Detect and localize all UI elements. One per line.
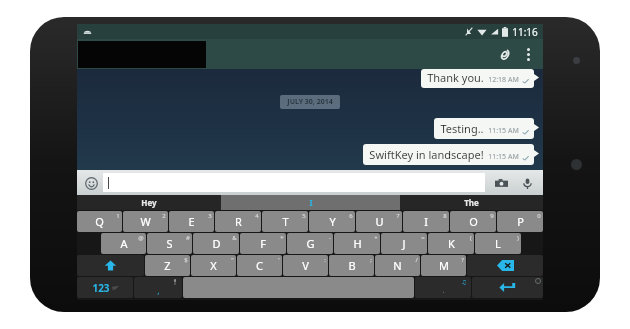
button[interactable]: X — [191, 255, 236, 276]
staticText: & — [232, 234, 237, 242]
staticText: C — [256, 258, 263, 273]
button[interactable]: Emoji — [81, 173, 101, 193]
staticText: P — [517, 214, 524, 229]
button[interactable]: S — [147, 233, 192, 254]
button[interactable]: Hey — [77, 195, 221, 210]
button[interactable]: Camera — [491, 173, 511, 193]
button[interactable]: The — [400, 195, 543, 210]
staticText: Hey — [141, 197, 157, 208]
button[interactable]: I — [403, 211, 449, 232]
button[interactable]: I — [221, 195, 400, 210]
button[interactable]: Thank you. — [421, 69, 534, 88]
button[interactable]: U — [356, 211, 402, 232]
button[interactable]: Q — [77, 211, 122, 232]
staticText: , — [157, 284, 160, 296]
staticText: / — [415, 256, 418, 264]
staticText: B — [348, 258, 356, 273]
staticText: @ — [138, 234, 144, 242]
button[interactable]: D — [193, 233, 239, 254]
staticText: R — [235, 214, 242, 229]
button[interactable]: W — [123, 211, 168, 232]
staticText: 11:16 — [512, 25, 538, 39]
button[interactable]: Testing.. — [434, 118, 534, 139]
staticText: X — [210, 258, 217, 273]
button[interactable]: R — [215, 211, 261, 232]
button[interactable]: H — [334, 233, 380, 254]
staticText: A — [120, 236, 128, 251]
staticText: L — [495, 236, 501, 251]
staticText: F — [260, 236, 266, 251]
staticText: ? — [461, 256, 464, 264]
staticText: 3 — [208, 212, 212, 220]
staticText: ) — [517, 234, 519, 242]
button[interactable]: Z — [145, 255, 190, 276]
staticText: 1 — [116, 212, 120, 220]
staticText: I — [424, 214, 428, 229]
staticText: N — [393, 258, 402, 273]
staticText: Thank you. — [427, 70, 484, 85]
staticText: 11:15 AM — [488, 152, 519, 162]
staticText: - — [329, 234, 331, 242]
staticText: . — [442, 283, 445, 295]
button[interactable]: SwiftKey in landscape! — [363, 144, 534, 165]
button[interactable]: Enter — [472, 277, 543, 298]
staticText: ; — [370, 256, 372, 264]
button[interactable]: Shift — [77, 255, 144, 276]
staticText: 8 — [443, 212, 447, 220]
staticText: G — [306, 236, 315, 251]
button[interactable]: E — [169, 211, 214, 232]
button[interactable]: Backspace — [467, 255, 543, 276]
button[interactable]: Attach — [491, 41, 517, 67]
staticText: ( — [470, 234, 472, 242]
button[interactable]: T — [262, 211, 308, 232]
staticText: JULY 30, 2014 — [287, 97, 333, 107]
button[interactable]: Voice message — [517, 173, 537, 193]
button[interactable]: G — [287, 233, 333, 254]
button[interactable]: Numbers — [77, 277, 133, 298]
staticText: V — [302, 258, 309, 273]
button[interactable]: Comma — [134, 277, 182, 298]
button[interactable]: F — [240, 233, 286, 254]
staticText: ♫ — [461, 278, 467, 285]
staticText: # — [186, 234, 190, 242]
staticText: Q — [95, 214, 104, 229]
staticText: H — [353, 236, 362, 251]
staticText: 6 — [349, 212, 353, 220]
staticText: * — [280, 234, 284, 242]
button[interactable]: K — [428, 233, 474, 254]
button[interactable]: C — [237, 255, 282, 276]
staticText: 4 — [255, 212, 259, 220]
staticText: J — [402, 236, 406, 251]
staticText: D — [212, 236, 221, 251]
staticText: SwiftKey in landscape! — [369, 147, 484, 162]
staticText: " — [231, 256, 234, 264]
staticText: T — [282, 214, 289, 229]
button[interactable]: J — [381, 233, 427, 254]
staticText: $ — [184, 256, 188, 264]
button[interactable]: V — [283, 255, 328, 276]
staticText: = — [421, 234, 425, 242]
button[interactable]: N — [375, 255, 420, 276]
staticText: Y — [329, 214, 336, 229]
button[interactable] — [103, 173, 485, 192]
button[interactable]: B — [329, 255, 374, 276]
staticText: 5 — [302, 212, 306, 220]
button[interactable]: More options — [517, 43, 539, 65]
staticText: : — [324, 256, 326, 264]
staticText: The — [464, 197, 479, 208]
button[interactable]: M — [421, 255, 466, 276]
staticText: 2 — [162, 212, 166, 220]
button[interactable]: Y — [309, 211, 355, 232]
button[interactable]: O — [450, 211, 496, 232]
button[interactable]: P — [497, 211, 543, 232]
staticText: Z — [164, 258, 171, 273]
staticText: + — [374, 234, 378, 242]
staticText: S — [166, 236, 173, 251]
staticText: I — [309, 197, 313, 208]
staticText: 7 — [396, 212, 400, 220]
button[interactable]: L — [475, 233, 521, 254]
button[interactable]: A — [101, 233, 146, 254]
button[interactable]: Period — [415, 277, 471, 298]
